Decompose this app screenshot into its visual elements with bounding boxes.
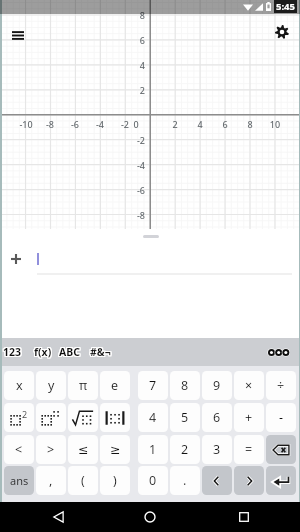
button[interactable] bbox=[266, 435, 296, 464]
staticText: 123 bbox=[3, 345, 22, 359]
staticText: ABC bbox=[60, 346, 81, 360]
button[interactable]: 0 bbox=[138, 466, 168, 495]
button[interactable]: > bbox=[36, 435, 66, 464]
staticText: -4 bbox=[90, 118, 110, 130]
staticText: 7 bbox=[149, 377, 157, 394]
button[interactable]: 4 bbox=[138, 403, 168, 432]
button[interactable]: - bbox=[266, 403, 296, 432]
button[interactable] bbox=[100, 403, 130, 432]
staticText: 2 bbox=[165, 118, 185, 130]
staticText: 8 bbox=[181, 377, 189, 394]
staticText: ABC bbox=[60, 345, 81, 359]
staticText: f(x) bbox=[34, 344, 52, 358]
button[interactable]: 3 bbox=[202, 435, 232, 464]
button[interactable]: = bbox=[234, 435, 264, 464]
staticText: 123 bbox=[2, 345, 21, 359]
staticText: #&¬ bbox=[89, 345, 110, 359]
staticText: < bbox=[15, 441, 23, 458]
staticText: 0 bbox=[126, 118, 146, 130]
staticText: #&¬ bbox=[91, 346, 112, 360]
button[interactable]: #&¬ bbox=[87, 340, 114, 364]
staticText: f(x) bbox=[33, 346, 51, 360]
staticText: f(x) bbox=[34, 345, 52, 359]
staticText: ) bbox=[113, 472, 117, 489]
staticText: 4 bbox=[149, 409, 157, 426]
button[interactable] bbox=[68, 403, 98, 432]
staticText: ABC bbox=[58, 344, 79, 358]
staticText: ABC bbox=[58, 345, 79, 359]
button[interactable]: ( bbox=[68, 466, 98, 495]
staticText: ABC bbox=[59, 346, 80, 360]
button[interactable]: ans bbox=[4, 466, 34, 495]
button[interactable]: ≤ bbox=[68, 435, 98, 464]
button[interactable]: Home bbox=[132, 502, 168, 532]
button[interactable]: 9 bbox=[202, 371, 232, 400]
staticText: 123 bbox=[4, 344, 23, 358]
staticText: 5:45 bbox=[276, 0, 295, 13]
staticText: #&¬ bbox=[90, 344, 111, 358]
button[interactable]: x bbox=[4, 371, 34, 400]
button[interactable]: Recents bbox=[226, 502, 262, 532]
staticText: 3 bbox=[213, 441, 221, 458]
button[interactable]: , bbox=[36, 466, 66, 495]
button[interactable]: < bbox=[4, 435, 34, 464]
staticText: 123 bbox=[4, 345, 23, 359]
staticText: π bbox=[79, 377, 88, 394]
staticText: #&¬ bbox=[91, 345, 112, 359]
button[interactable]: 8 bbox=[170, 371, 200, 400]
button[interactable]: More options bbox=[262, 338, 292, 366]
staticText: #&¬ bbox=[90, 345, 111, 359]
button[interactable]: 2 bbox=[170, 435, 200, 464]
staticText: f(x) bbox=[35, 344, 53, 358]
button[interactable]: 5 bbox=[170, 403, 200, 432]
button[interactable]: ÷ bbox=[266, 371, 296, 400]
button[interactable]: ABC bbox=[56, 340, 83, 364]
staticText: × bbox=[245, 377, 253, 394]
staticText: 0 bbox=[149, 472, 157, 489]
staticText: + bbox=[245, 409, 253, 426]
button[interactable] bbox=[234, 466, 264, 495]
button[interactable]: ) bbox=[100, 466, 130, 495]
staticText: 10 bbox=[265, 118, 285, 130]
staticText: 123 bbox=[2, 344, 21, 358]
button[interactable]: e bbox=[100, 371, 130, 400]
staticText: ABC bbox=[59, 344, 80, 358]
staticText: #&¬ bbox=[89, 344, 110, 358]
staticText: ≤ bbox=[78, 442, 89, 457]
staticText: -10 bbox=[16, 118, 36, 130]
button[interactable]: f(x) bbox=[31, 340, 55, 364]
button[interactable]: × bbox=[234, 371, 264, 400]
staticText: - bbox=[279, 409, 284, 426]
button[interactable]: . bbox=[170, 466, 200, 495]
staticText: 8 bbox=[240, 118, 260, 130]
button[interactable]: Settings bbox=[270, 20, 294, 44]
staticText: 6 bbox=[215, 118, 235, 130]
staticText: f(x) bbox=[35, 346, 53, 360]
staticText: , bbox=[49, 472, 53, 489]
button[interactable]: Menu bbox=[6, 23, 30, 47]
button[interactable]: ≥ bbox=[100, 435, 130, 464]
staticText: e bbox=[111, 377, 119, 394]
staticText: 8 bbox=[124, 9, 145, 21]
staticText: -6 bbox=[65, 118, 85, 130]
button[interactable]: 7 bbox=[138, 371, 168, 400]
staticText: 5 bbox=[181, 409, 189, 426]
button[interactable]: Back bbox=[40, 502, 76, 532]
button[interactable]: 2 bbox=[4, 403, 34, 432]
button[interactable]: 1 bbox=[138, 435, 168, 464]
button[interactable]: y bbox=[36, 371, 66, 400]
staticText: 9 bbox=[213, 377, 221, 394]
button[interactable]: 6 bbox=[202, 403, 232, 432]
staticText: ÷ bbox=[277, 377, 285, 394]
button[interactable] bbox=[266, 466, 296, 495]
button[interactable]: + bbox=[234, 403, 264, 432]
staticText: #&¬ bbox=[89, 346, 110, 360]
button[interactable]: π bbox=[68, 371, 98, 400]
button[interactable]: Add expression bbox=[5, 248, 27, 270]
staticText: f(x) bbox=[34, 346, 52, 360]
button[interactable] bbox=[202, 466, 232, 495]
staticText: ≥ bbox=[110, 442, 121, 457]
button[interactable] bbox=[36, 403, 66, 432]
button[interactable]: 123 bbox=[0, 340, 25, 364]
staticText: -2 bbox=[124, 134, 145, 146]
